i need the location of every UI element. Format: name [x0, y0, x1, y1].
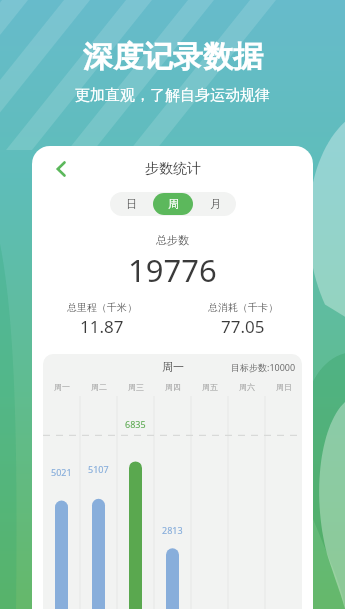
staticText: 周一	[54, 382, 70, 392]
staticText: 6835	[125, 418, 146, 430]
staticText: 周二	[91, 382, 107, 392]
button[interactable]: 日	[111, 193, 151, 215]
staticText: 周一	[162, 360, 184, 374]
staticText: 周日	[276, 382, 292, 392]
button[interactable]: Back	[46, 154, 76, 184]
staticText: 11.87	[80, 315, 124, 338]
button[interactable]: 月	[195, 193, 235, 215]
staticText: 5021	[51, 466, 72, 478]
staticText: 周四	[165, 382, 181, 392]
staticText: 5107	[88, 463, 109, 475]
staticText: 深度记录数据	[83, 38, 263, 76]
staticText: 19776	[128, 249, 217, 291]
staticText: 更加直观，了解自身运动规律	[75, 86, 270, 105]
staticText: 月	[210, 197, 221, 211]
staticText: 周	[168, 197, 179, 211]
staticText: 77.05	[221, 315, 265, 338]
button[interactable]: 周	[153, 193, 193, 215]
staticText: 目标步数:10000	[231, 361, 296, 373]
staticText: 总里程（千米）	[67, 301, 137, 314]
staticText: 2813	[162, 524, 183, 536]
staticText: 周六	[239, 382, 255, 392]
staticText: 周五	[202, 382, 218, 392]
staticText: 总消耗（千卡）	[208, 301, 278, 314]
staticText: 总步数	[156, 233, 189, 247]
staticText: 日	[126, 197, 137, 211]
staticText: 周三	[128, 382, 144, 392]
staticText: 步数统计	[145, 160, 201, 178]
